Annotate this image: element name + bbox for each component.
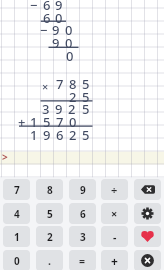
staticText: 0 (65, 21, 73, 35)
button[interactable]: 5 (36, 203, 63, 224)
button[interactable]: - (101, 226, 128, 247)
staticText: − (40, 21, 48, 35)
staticText: 7 (56, 113, 64, 127)
button[interactable]: 4 (3, 203, 30, 224)
staticText: 0 (66, 47, 74, 61)
staticText: 6 (56, 126, 64, 140)
staticText: 8 (47, 183, 53, 197)
staticText: 6 (80, 207, 86, 221)
staticText: 9 (80, 183, 86, 197)
button[interactable]: 9 (69, 179, 96, 200)
staticText: 3 (42, 100, 50, 114)
staticText: 9 (52, 34, 60, 48)
staticText: 1 (30, 113, 38, 127)
staticText: 0 (65, 34, 73, 48)
staticText: 9 (52, 21, 60, 35)
staticText: 7 (14, 183, 20, 197)
staticText: 5 (82, 88, 90, 102)
staticText: 5 (47, 207, 53, 221)
button[interactable] (134, 226, 161, 247)
staticText: 8 (69, 75, 77, 89)
staticText: 5 (82, 126, 90, 140)
button[interactable]: . (36, 250, 63, 270)
staticText: 5 (43, 113, 51, 127)
staticText: 3 (80, 230, 86, 244)
staticText: 2 (69, 126, 77, 140)
staticText: 6 (43, 0, 51, 10)
staticText: + (18, 113, 26, 127)
staticText: 9 (43, 126, 51, 140)
staticText: × (42, 79, 49, 93)
staticText: = (79, 254, 86, 268)
button[interactable]: 8 (36, 179, 63, 200)
staticText: − (30, 0, 38, 10)
staticText: . (48, 254, 51, 268)
button[interactable]: 0 (3, 250, 30, 270)
staticText: + (111, 253, 118, 269)
staticText: 9 (55, 100, 63, 114)
button[interactable] (134, 250, 161, 270)
staticText: 2 (47, 230, 53, 244)
button[interactable]: 3 (69, 226, 96, 247)
staticText: > (2, 150, 8, 164)
button[interactable]: 6 (69, 203, 96, 224)
staticText: 0 (55, 9, 63, 23)
button[interactable]: + (101, 250, 128, 270)
button[interactable]: 2 (36, 226, 63, 247)
staticText: 7 (56, 75, 64, 89)
button[interactable]: ÷ (101, 179, 128, 200)
staticText: 9 (55, 0, 63, 10)
button[interactable]: × (101, 203, 128, 224)
staticText: 5 (82, 75, 90, 89)
button[interactable]: 7 (3, 179, 30, 200)
staticText: 0 (14, 254, 20, 268)
staticText: 0 (69, 113, 77, 127)
staticText: 2 (69, 88, 77, 102)
button[interactable]: = (69, 250, 96, 270)
staticText: 6 (43, 9, 51, 23)
button[interactable] (134, 179, 161, 200)
staticText: 1 (30, 126, 38, 140)
staticText: 5 (82, 100, 90, 114)
staticText: - (113, 230, 117, 244)
staticText: 2 (68, 100, 76, 114)
staticText: 1 (14, 230, 20, 244)
staticText: × (111, 206, 118, 221)
button[interactable]: 1 (3, 226, 30, 247)
staticText: ÷ (111, 182, 118, 197)
button[interactable] (134, 203, 161, 224)
staticText: 4 (14, 207, 20, 221)
